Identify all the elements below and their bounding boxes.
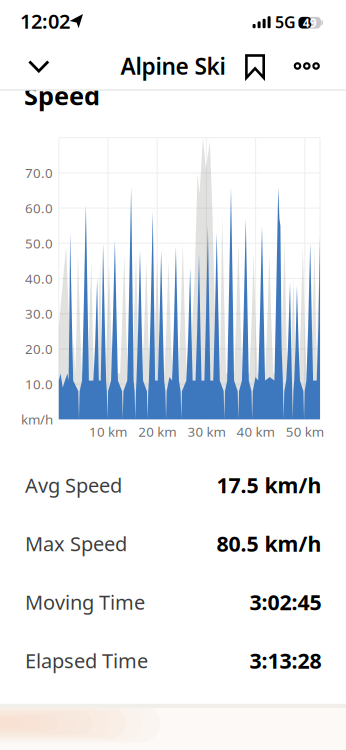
staticText: 10 km: [89, 423, 127, 440]
staticText: 30.0: [25, 305, 53, 322]
staticText: 17.5 km/h: [216, 471, 321, 499]
staticText: 50.0: [25, 234, 53, 252]
staticText: Alpine Ski: [120, 51, 225, 81]
staticText: 70.0: [25, 164, 53, 182]
button[interactable]: Close: [22, 51, 56, 81]
staticText: 80.5 km/h: [216, 529, 321, 558]
staticText: 40 km: [237, 423, 275, 440]
staticText: Speed: [24, 79, 100, 112]
staticText: 49: [303, 15, 317, 31]
staticText: 50 km: [286, 423, 324, 440]
staticText: km/h: [21, 410, 53, 428]
staticText: 3:13:28: [249, 646, 321, 675]
staticText: 12:02: [20, 8, 70, 34]
staticText: Max Speed: [25, 530, 127, 557]
button[interactable]: Save: [242, 51, 268, 81]
staticText: Elapsed Time: [25, 647, 148, 674]
staticText: 30 km: [187, 423, 225, 440]
staticText: 40.0: [25, 270, 53, 287]
staticText: 5G: [275, 11, 296, 33]
staticText: 20 km: [138, 423, 176, 440]
button[interactable]: More options: [292, 51, 322, 81]
staticText: 10.0: [25, 375, 53, 393]
staticText: Moving Time: [25, 589, 145, 615]
staticText: 20.0: [25, 340, 53, 358]
staticText: 60.0: [25, 199, 53, 217]
staticText: Avg Speed: [25, 472, 122, 498]
staticText: 3:02:45: [249, 588, 321, 616]
